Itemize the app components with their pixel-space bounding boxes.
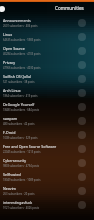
staticText: Linux (3, 32, 13, 37)
button[interactable]: DeGoogle Yourself (0, 100, 94, 114)
staticText: 263 subscribers · 20 posts (3, 192, 35, 196)
button[interactable]: F-Droid (0, 128, 94, 142)
staticText: 1864 subscribers · 419 posts (3, 94, 38, 98)
staticText: 22045 subscribers · 1215 posts (3, 150, 41, 154)
staticText: Free and Open Source Software (3, 144, 57, 149)
staticText: 40284 subscribers · 4103 posts (3, 52, 41, 56)
staticText: Open Source (3, 46, 25, 51)
button[interactable]: Open Source (0, 44, 94, 58)
staticText: 2601 subscribers · 406 posts (3, 24, 38, 28)
staticText: 9121 subscribers · 4026 posts (3, 206, 39, 210)
button[interactable]: Linux (0, 30, 94, 44)
staticText: swapam (3, 116, 18, 121)
staticText: Communities (55, 5, 84, 11)
button[interactable]: Profile (0, 6, 5, 12)
staticText: 9803 subscribers · 4794 posts (3, 164, 39, 168)
staticText: 18049 subscribers · 1089 posts (3, 178, 41, 182)
staticText: 1008 subscribers · 529 posts (3, 136, 38, 140)
staticText: interestingasfuck (3, 200, 33, 205)
staticText: Sailfish OS (Jolla) (3, 74, 32, 79)
staticText: Selfhosted (3, 172, 21, 177)
staticText: DeGoogle Yourself (3, 102, 35, 107)
staticText: F-Droid (3, 130, 16, 135)
button[interactable]: Announcements (0, 16, 94, 30)
button[interactable]: Neovim (0, 184, 94, 198)
staticText: Announcements (3, 18, 31, 23)
staticText: Arch Linux (3, 88, 21, 93)
button[interactable]: interestingasfuck (0, 198, 94, 212)
button[interactable]: Free and Open Source Software (0, 142, 94, 156)
staticText: Neovim (3, 186, 16, 191)
staticText: 18483 subscribers · 684 posts (3, 108, 39, 112)
button[interactable]: swapam (0, 114, 94, 128)
button[interactable]: Cybersecurity (0, 156, 94, 170)
button[interactable]: Privacy (0, 58, 94, 72)
staticText: Privacy (3, 60, 15, 65)
staticText: Cybersecurity (3, 158, 27, 163)
staticText: 480 subscribers · 42 posts (3, 122, 35, 126)
button[interactable]: Selfhosted (0, 170, 94, 184)
button[interactable]: Arch Linux (0, 86, 94, 100)
staticText: 47966 subscribers · 4030 posts (3, 66, 41, 70)
staticText: 64635 subscribers · 5983 posts (3, 38, 41, 42)
staticText: 521 subscribers · 38 posts (3, 80, 35, 84)
button[interactable]: Sailfish OS (Jolla) (0, 72, 94, 86)
